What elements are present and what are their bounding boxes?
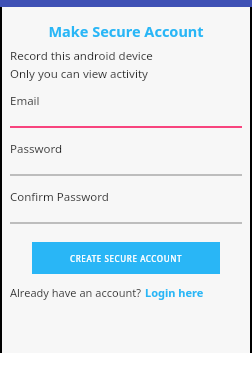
button[interactable]: Confirm Password	[10, 189, 242, 224]
staticText: Record this android device	[10, 48, 153, 64]
staticText: Email	[10, 93, 40, 109]
staticText: Confirm Password	[10, 189, 109, 205]
button[interactable]: CREATE SECURE ACCOUNT	[32, 242, 220, 274]
button[interactable]: Password	[10, 141, 242, 176]
button[interactable]: Email	[10, 93, 242, 128]
staticText: Make Secure Account	[10, 21, 242, 41]
staticText: Login here	[145, 285, 204, 300]
button[interactable]: Login here	[145, 285, 204, 300]
staticText: Password	[10, 141, 63, 157]
staticText: Only you can view activity	[10, 66, 148, 82]
staticText: Already have an account?	[10, 285, 141, 300]
staticText: CREATE SECURE ACCOUNT	[70, 253, 183, 264]
